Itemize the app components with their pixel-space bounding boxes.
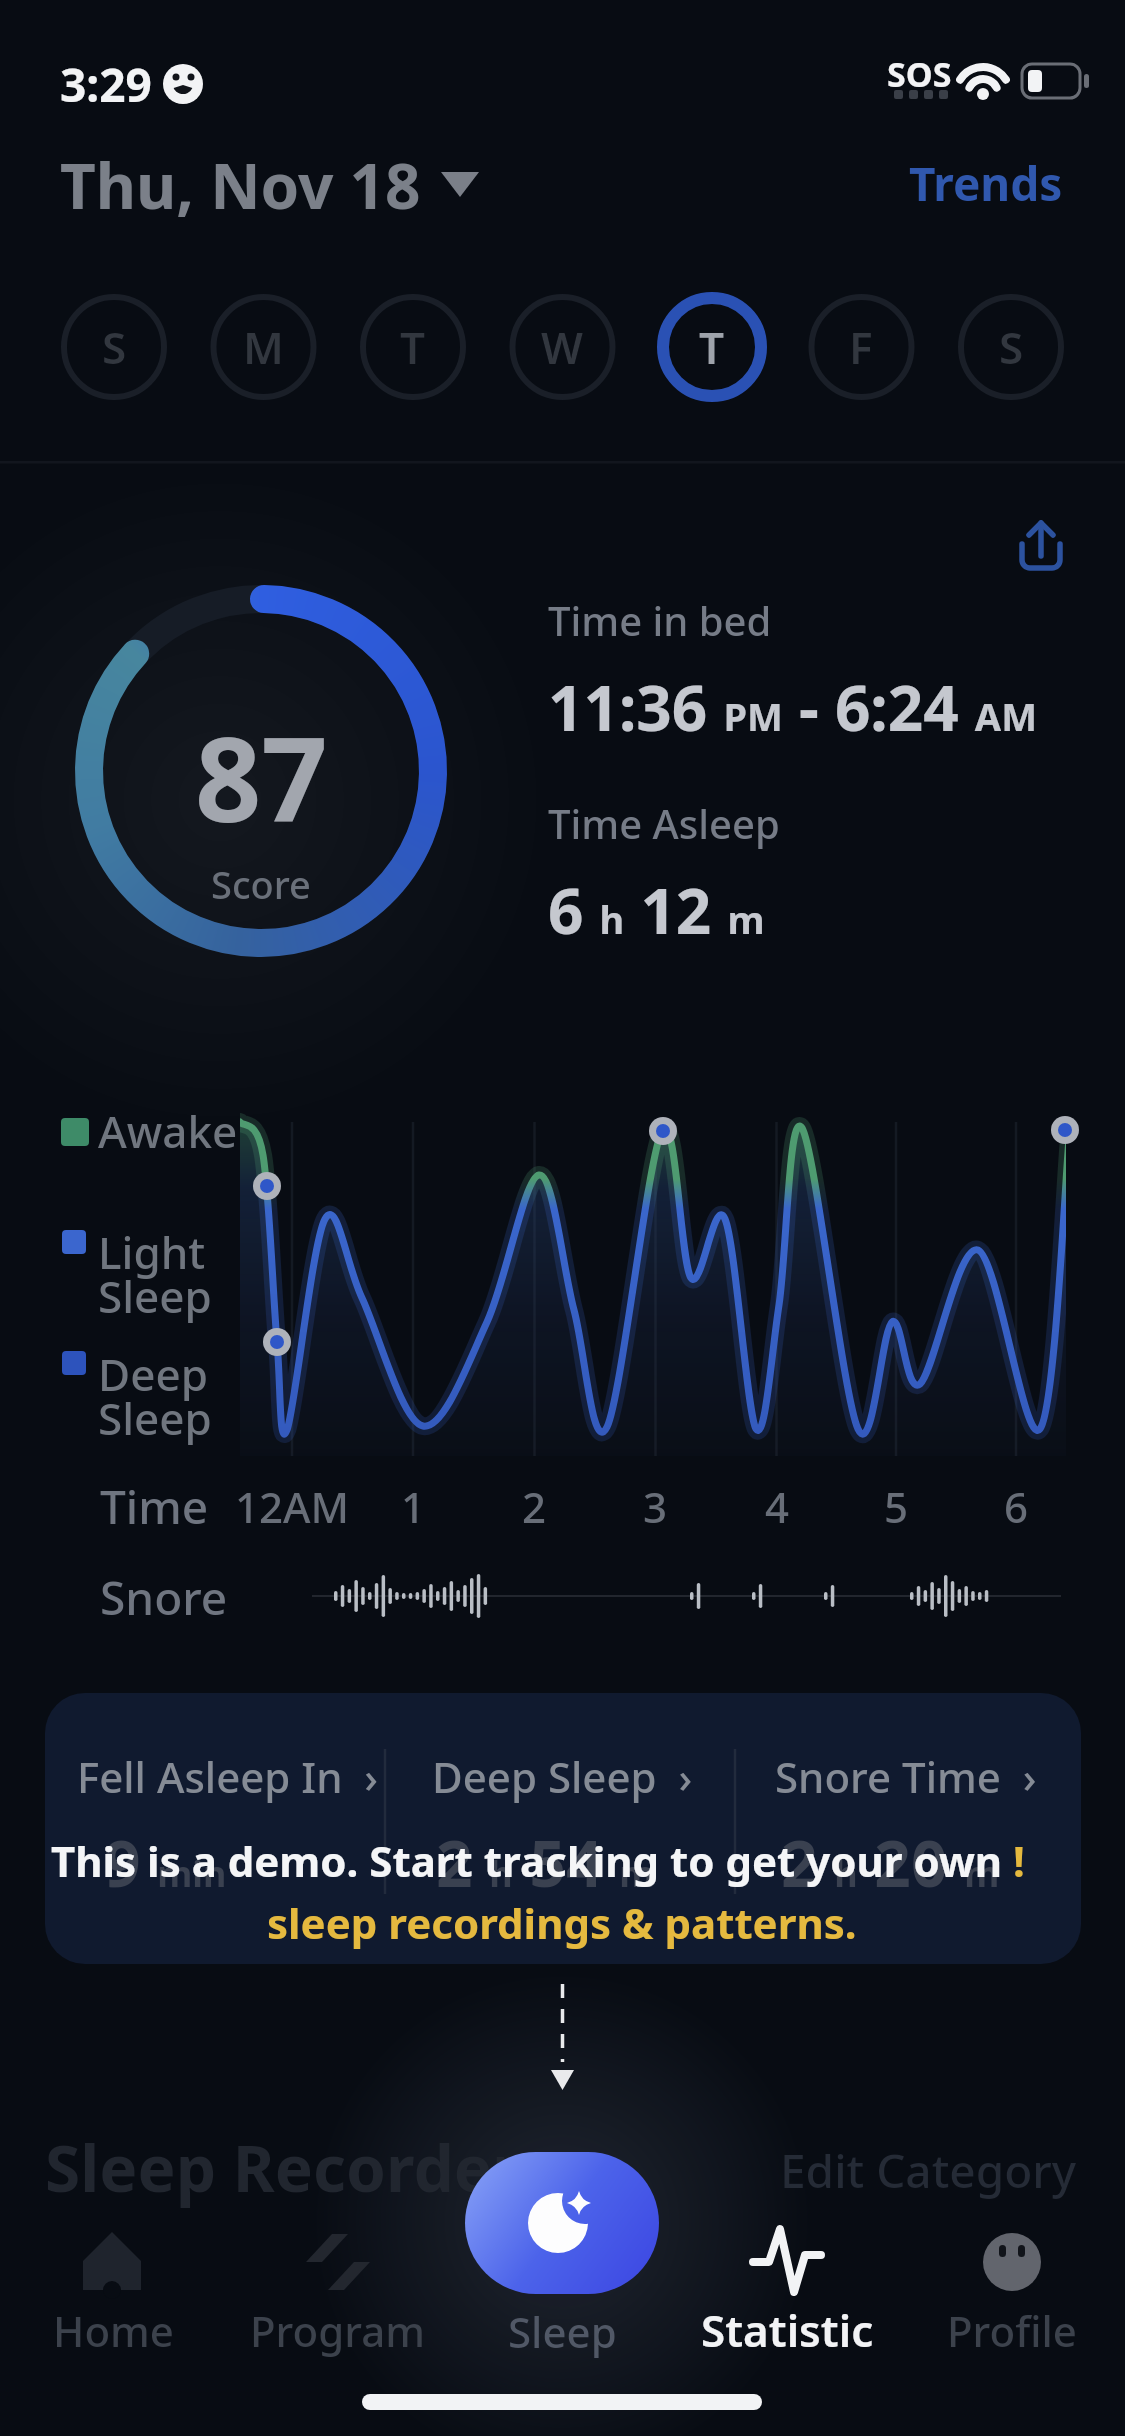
staticText: Profile — [947, 2302, 1077, 2359]
staticText: 2 — [522, 1478, 547, 1535]
button[interactable] — [55, 145, 490, 225]
staticText: Deep Sleep › — [432, 1748, 693, 1805]
staticText: Trends — [909, 152, 1063, 215]
staticText: 4 — [765, 1478, 790, 1535]
staticText: 3:29 — [60, 53, 152, 116]
staticText: Sleep Recorder — [45, 2124, 521, 2211]
staticText: M — [243, 317, 284, 377]
staticText: F — [849, 317, 873, 377]
staticText: 2 h 54 m — [436, 1819, 655, 1906]
staticText: 12AM — [235, 1478, 350, 1535]
staticText: Home — [53, 2302, 174, 2359]
button[interactable] — [208, 292, 318, 402]
staticText: Thu, Nov 18 — [60, 143, 421, 227]
button[interactable] — [1005, 512, 1077, 584]
staticText: 2 h 20 m — [781, 1819, 1000, 1906]
staticText: sleep recordings & patterns. — [267, 1894, 857, 1951]
staticText: Time — [100, 1475, 209, 1538]
staticText: Snore — [100, 1566, 228, 1629]
staticText: Time Asleep — [548, 796, 780, 850]
button[interactable] — [780, 2135, 1080, 2205]
staticText: Program — [250, 2302, 425, 2359]
button[interactable] — [507, 292, 617, 402]
staticText: SOS — [887, 51, 952, 97]
button[interactable] — [712, 2205, 862, 2360]
staticText: This is a demo. Start tracking to get yo… — [51, 1832, 1025, 1889]
staticText: S — [999, 317, 1024, 377]
staticText: 1 — [401, 1478, 426, 1535]
staticText: S — [102, 317, 127, 377]
staticText: Awake — [98, 1101, 238, 1161]
staticText: Snore Time › — [775, 1748, 1037, 1805]
staticText: 6 h 12 m — [548, 868, 765, 952]
staticText: Sleep — [98, 1388, 212, 1448]
staticText: Edit Category — [780, 2139, 1077, 2202]
staticText: 3 — [643, 1478, 668, 1535]
staticText: Statistic — [701, 2300, 874, 2360]
button[interactable] — [38, 2205, 188, 2360]
staticText: Sleep — [508, 2303, 617, 2360]
button[interactable] — [59, 292, 169, 402]
staticText: W — [541, 317, 583, 377]
staticText: Deep — [98, 1344, 208, 1404]
staticText: 5 — [884, 1478, 909, 1535]
staticText: 87 — [195, 698, 328, 838]
staticText: Fell Asleep In › — [77, 1748, 379, 1805]
staticText: 9 min — [104, 1819, 227, 1906]
button[interactable] — [358, 292, 468, 402]
staticText: Score — [211, 858, 311, 910]
button[interactable] — [806, 292, 916, 402]
staticText: 6 — [1004, 1478, 1029, 1535]
button[interactable] — [956, 292, 1066, 402]
staticText: 11:36 PM - 6:24 AM — [548, 665, 1037, 749]
staticText: T — [400, 317, 426, 377]
staticText: Time in bed — [548, 593, 772, 647]
button[interactable] — [390, 1693, 735, 1964]
button[interactable] — [465, 2152, 659, 2294]
button[interactable] — [657, 292, 767, 402]
button[interactable] — [45, 1693, 390, 1964]
button[interactable] — [735, 1693, 1081, 1964]
staticText: Sleep — [98, 1266, 212, 1326]
button[interactable] — [900, 150, 1075, 220]
button[interactable] — [937, 2205, 1087, 2360]
staticText: Light — [98, 1222, 206, 1282]
button[interactable] — [262, 2205, 412, 2360]
staticText: T — [699, 317, 725, 377]
